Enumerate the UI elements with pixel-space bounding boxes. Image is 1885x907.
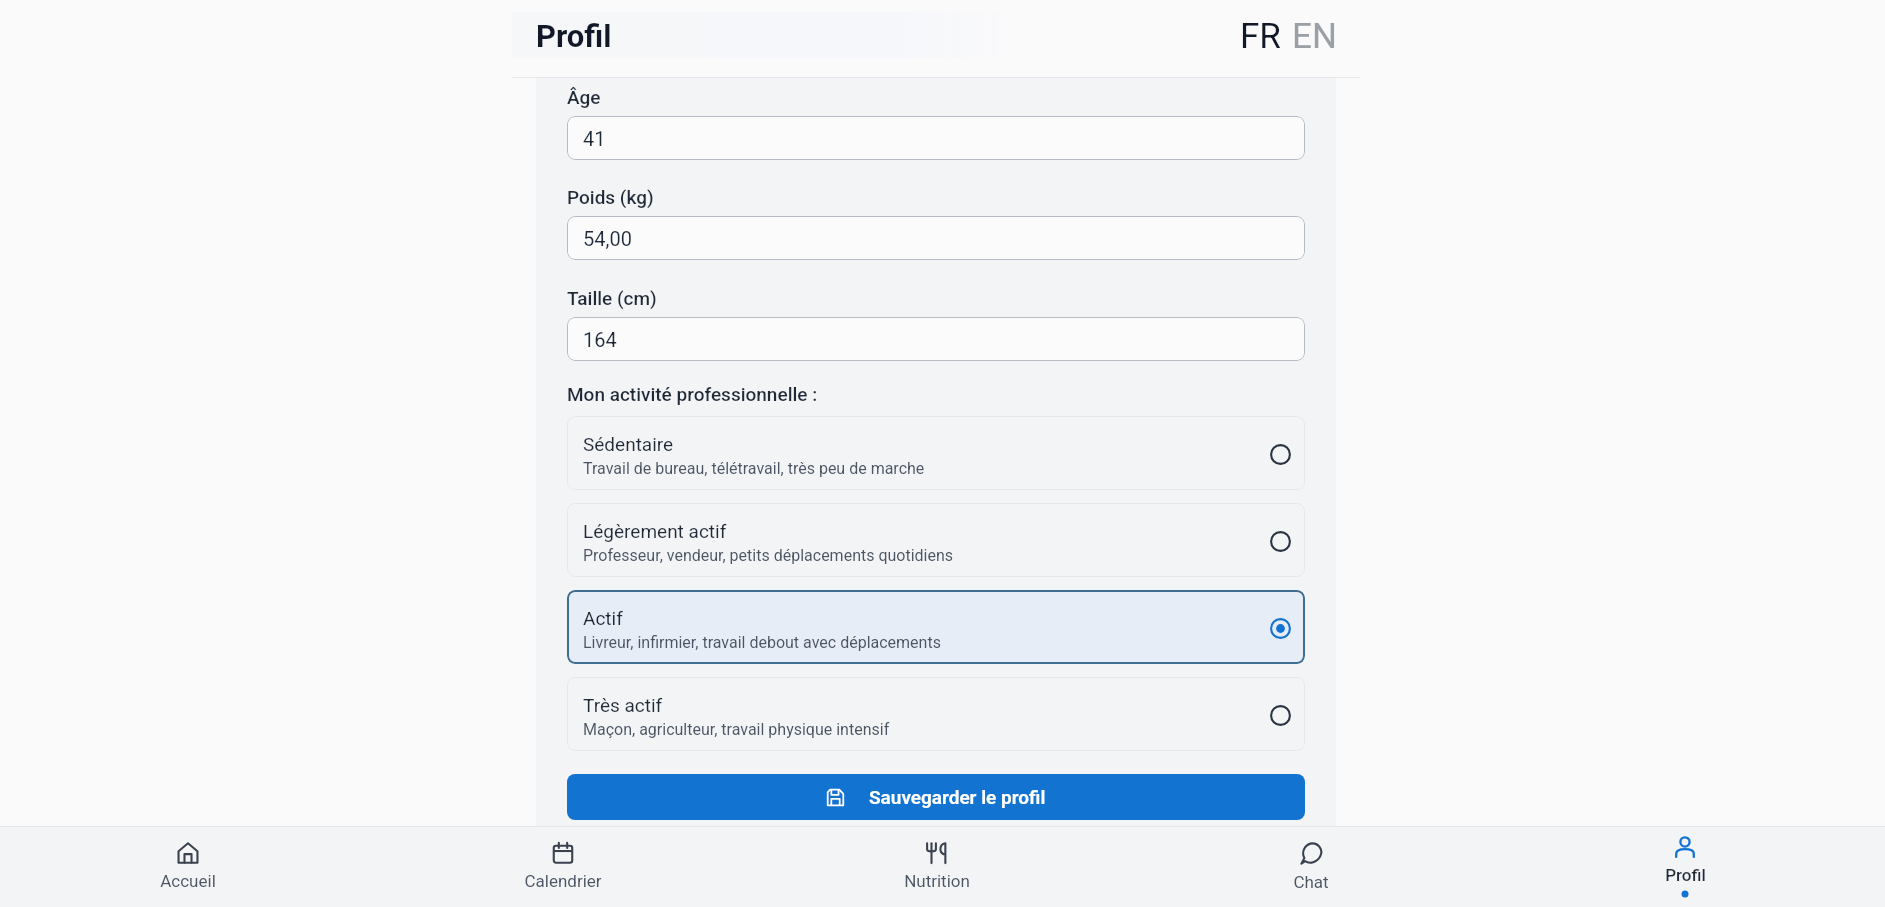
button[interactable]: Accueil xyxy=(0,826,375,907)
button[interactable]: 41 xyxy=(567,116,1305,160)
staticText: Profil xyxy=(536,18,612,54)
button[interactable]: FR xyxy=(1235,12,1286,61)
button[interactable]: Chat xyxy=(1124,826,1498,907)
button[interactable]: 164 xyxy=(567,317,1305,361)
other: Profil xyxy=(1674,836,1696,858)
other: Accueil xyxy=(177,842,199,864)
other: Nutrition xyxy=(926,842,948,864)
button[interactable]: Profil xyxy=(1498,826,1872,907)
button[interactable]: Sauvegarder le profil xyxy=(567,774,1305,820)
staticText: Nutrition xyxy=(904,871,970,891)
button[interactable]: Nutrition xyxy=(750,826,1124,907)
button[interactable]: Actif xyxy=(567,590,1305,664)
button[interactable]: Très actif xyxy=(567,677,1305,751)
staticText: Sauvegarder le profil xyxy=(869,786,1046,808)
staticText: Légèrement actif xyxy=(583,520,727,542)
staticText: FR xyxy=(1240,16,1281,57)
button[interactable]: Légèrement actif xyxy=(567,503,1305,577)
staticText: Mon activité professionnelle : xyxy=(567,383,818,405)
staticText: Taille (cm) xyxy=(567,287,657,309)
staticText: Profil xyxy=(1665,865,1706,885)
other: Chat xyxy=(1300,842,1323,865)
staticText: Âge xyxy=(567,86,601,108)
staticText: Calendrier xyxy=(524,871,602,891)
staticText: 41 xyxy=(583,127,606,150)
staticText: Travail de bureau, télétravail, très peu… xyxy=(583,459,925,478)
staticText: Professeur, vendeur, petits déplacements… xyxy=(583,546,954,565)
staticText: Actif xyxy=(583,607,623,629)
staticText: 164 xyxy=(583,328,617,351)
button[interactable]: EN xyxy=(1287,12,1342,61)
staticText: Très actif xyxy=(583,694,663,716)
staticText: Maçon, agriculteur, travail physique int… xyxy=(583,720,890,739)
button[interactable]: 54,00 xyxy=(567,216,1305,260)
staticText: Accueil xyxy=(160,871,216,891)
button[interactable]: Calendrier xyxy=(375,826,750,907)
staticText: Livreur, infirmier, travail debout avec … xyxy=(583,633,941,652)
staticText: EN xyxy=(1292,16,1337,57)
other: Calendrier xyxy=(552,842,574,864)
button[interactable]: Sédentaire xyxy=(567,416,1305,490)
staticText: Poids (kg) xyxy=(567,186,654,208)
staticText: Chat xyxy=(1293,872,1329,892)
staticText: 54,00 xyxy=(583,227,632,250)
staticText: Sédentaire xyxy=(583,433,674,455)
